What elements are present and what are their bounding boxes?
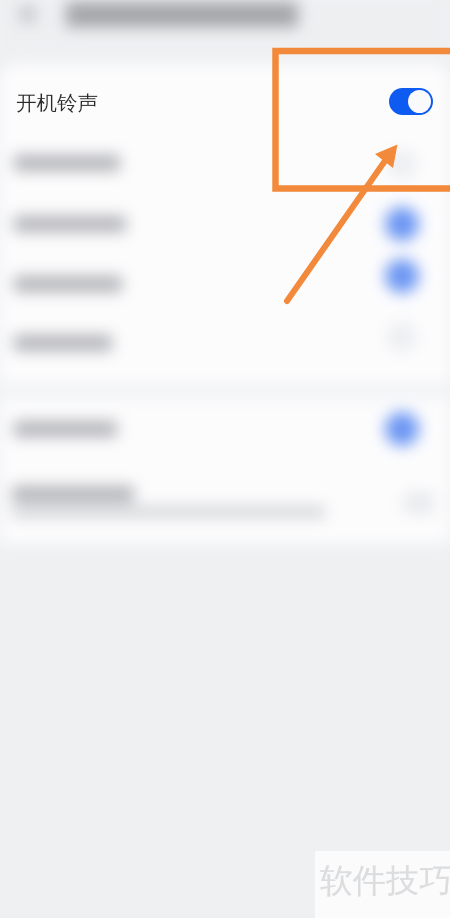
button[interactable]: Boot ringtone switch, on [389,88,433,115]
staticText: 软件技巧 [320,860,450,902]
staticText: 开机铃声 [16,90,98,116]
button[interactable]: 开机铃声 [0,72,450,130]
